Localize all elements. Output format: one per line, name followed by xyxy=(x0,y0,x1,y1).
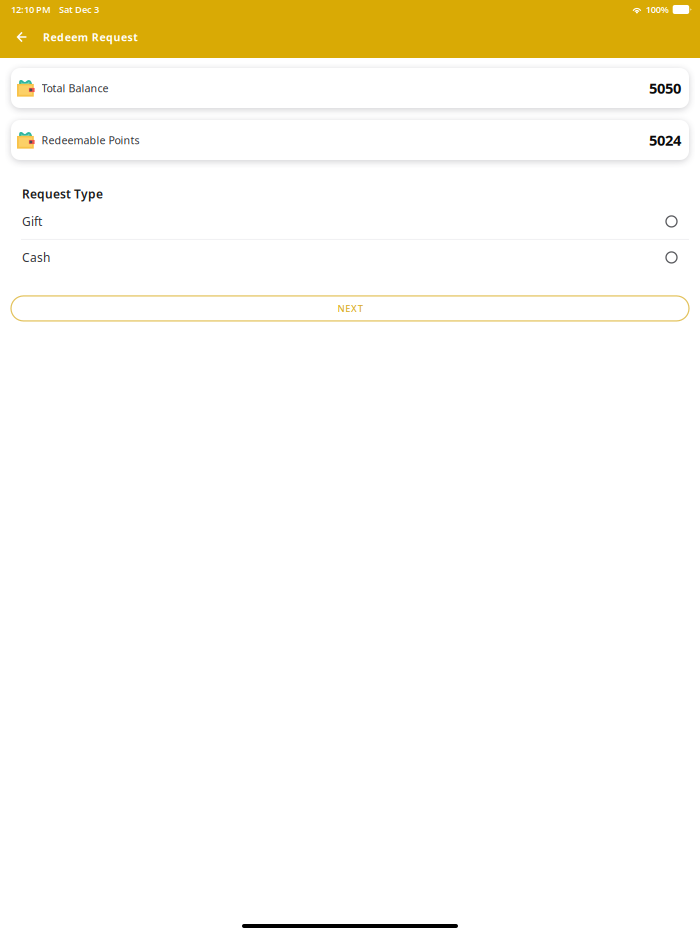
staticText: 5024 xyxy=(649,130,681,150)
staticText: NEXT xyxy=(337,302,363,315)
staticText: Request Type xyxy=(22,186,103,202)
button[interactable]: NEXT xyxy=(11,296,689,321)
staticText: Redeemable Points xyxy=(42,133,140,147)
button[interactable]: Back xyxy=(11,26,33,48)
button[interactable]: Cash xyxy=(0,240,700,275)
staticText: Total Balance xyxy=(42,81,109,95)
staticText: 5050 xyxy=(649,78,681,98)
staticText: Cash xyxy=(22,249,50,265)
button[interactable]: Gift xyxy=(0,204,700,239)
staticText: 100% xyxy=(646,3,669,16)
staticText: 12:10 PM xyxy=(11,3,51,16)
staticText: Gift xyxy=(22,213,42,229)
button[interactable]: Total Balance xyxy=(11,68,689,108)
staticText: Redeem Request xyxy=(43,30,138,44)
staticText: Sat Dec 3 xyxy=(59,3,99,16)
button[interactable]: Redeemable Points xyxy=(11,120,689,160)
